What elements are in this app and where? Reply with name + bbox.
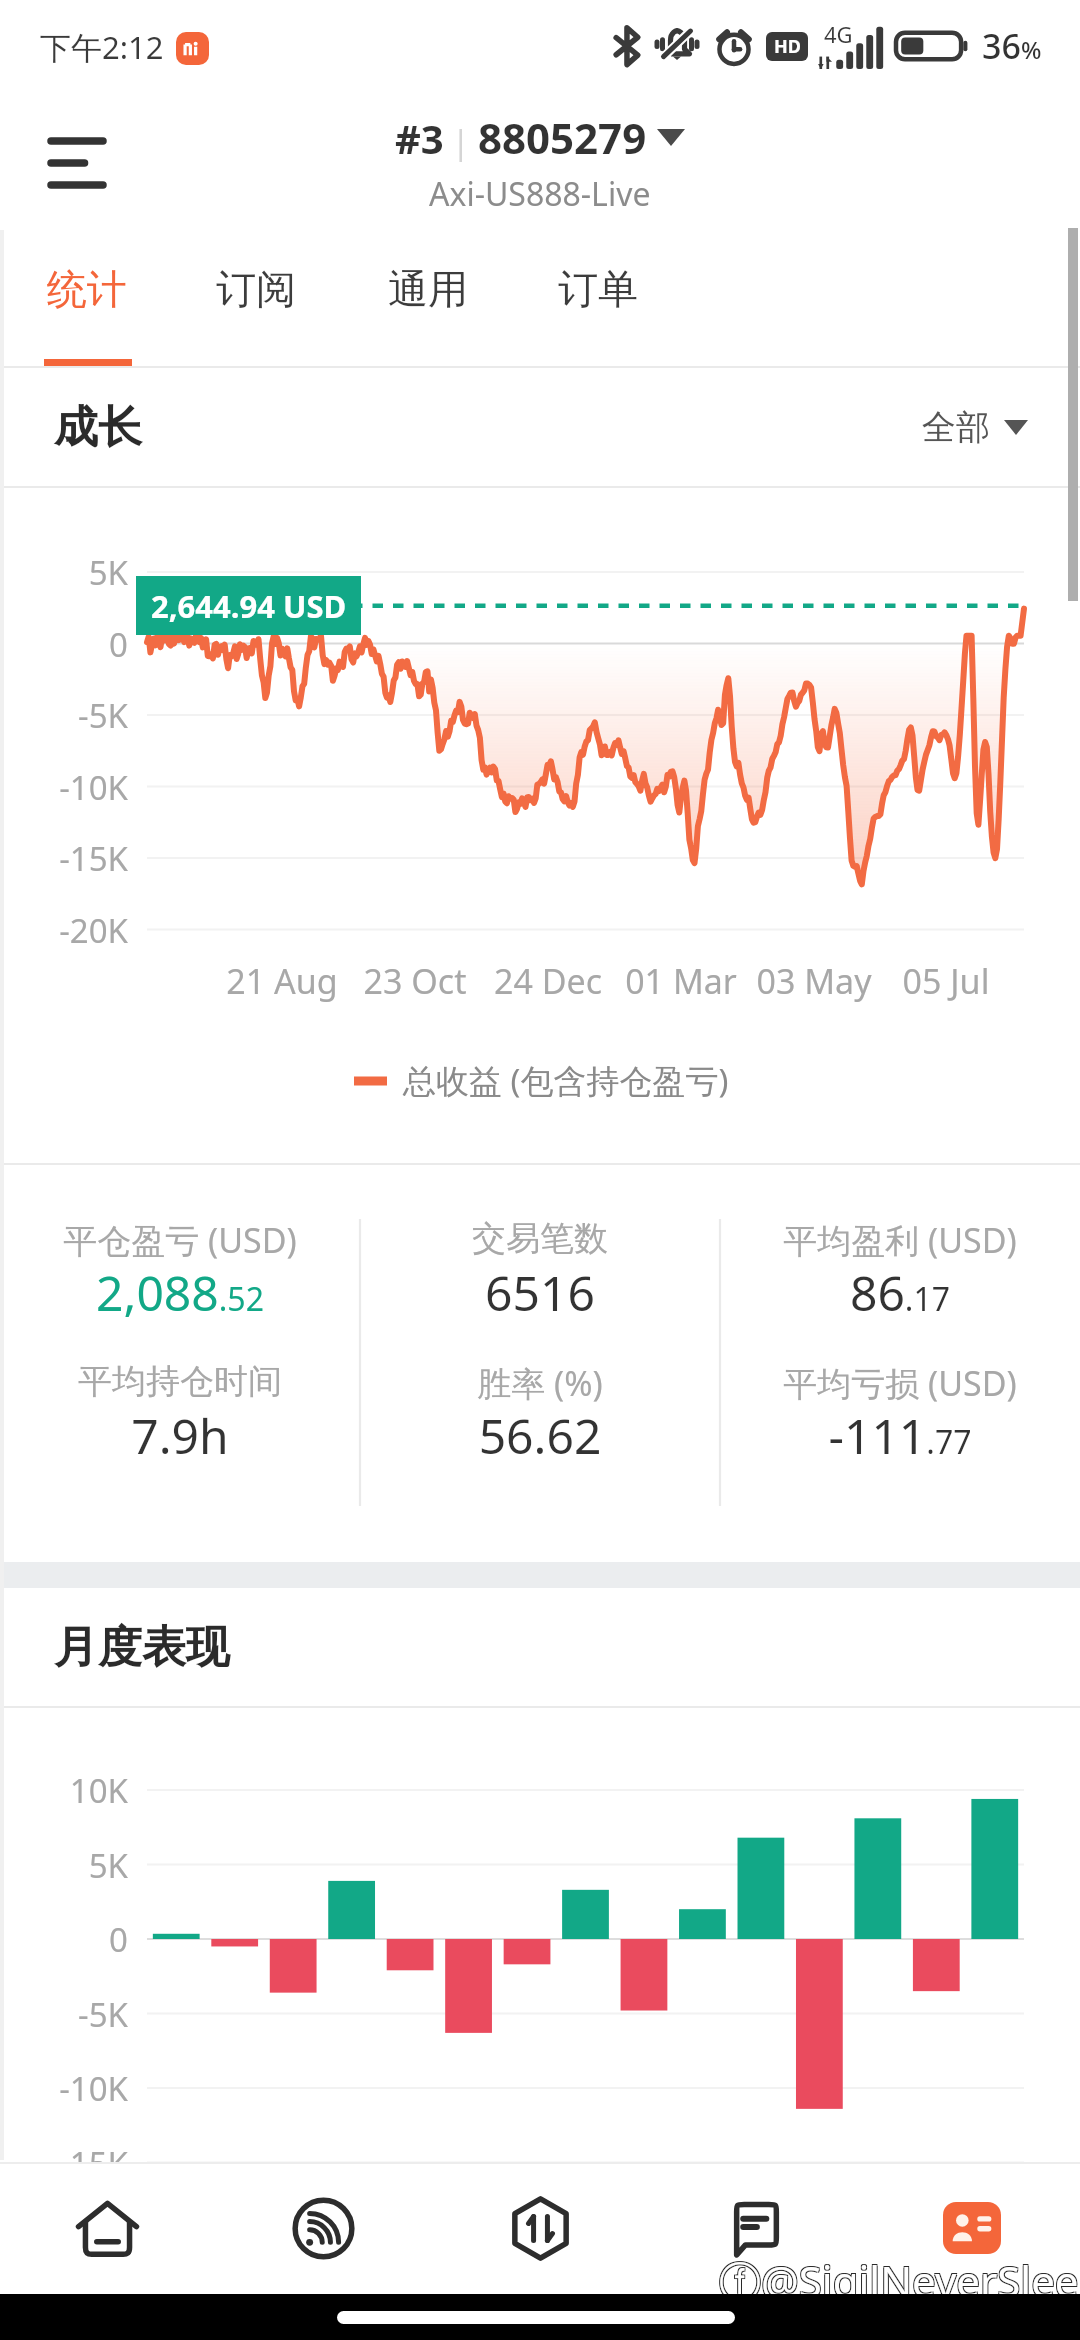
staticText: 通用 — [388, 264, 468, 314]
button[interactable]: Trade — [432, 2162, 648, 2294]
staticText: ⓕ@SigilNeverSleep — [718, 2251, 1080, 2308]
staticText: -15K — [59, 2141, 128, 2186]
staticText: ⓕ@SigilNeverSleep — [720, 2253, 1080, 2310]
staticText: 01 Mar — [591, 958, 771, 1004]
staticText: -10K — [59, 2066, 128, 2111]
button[interactable]: 订单 — [542, 230, 654, 366]
button[interactable]: #3 | 8805279 — [389, 105, 691, 170]
staticText: 平均持仓时间 — [0, 1360, 370, 1403]
staticText: 月度表现 — [54, 1620, 230, 1675]
button[interactable]: 订阅 — [200, 230, 312, 366]
staticText: 0 — [109, 622, 128, 667]
button[interactable]: Messages — [648, 2162, 864, 2294]
staticText: 10K — [69, 1768, 128, 1813]
staticText: 21 Aug — [192, 958, 372, 1004]
staticText: 7.9h — [0, 1403, 370, 1468]
staticText: 2,088.52 — [0, 1260, 370, 1325]
staticText: Axi-US888-Live — [429, 172, 651, 216]
staticText: 05 Jul — [856, 958, 1036, 1004]
staticText: 2,644.94 USD — [151, 585, 347, 627]
staticText: 6516 — [350, 1260, 730, 1325]
staticText: 平均亏损 (USD) — [710, 1360, 1080, 1406]
button[interactable]: 通用 — [372, 230, 484, 366]
staticText: 56.62 — [350, 1403, 730, 1468]
staticText: -111.77 — [710, 1403, 1080, 1468]
staticText: 4G — [824, 19, 853, 49]
staticText: 86.17 — [710, 1260, 1080, 1325]
staticText: 5K — [88, 1843, 128, 1888]
staticText: 订单 — [558, 264, 638, 314]
staticText: 胜率 (%) — [350, 1360, 730, 1406]
staticText: 03 May — [724, 958, 904, 1004]
button[interactable]: 统计 — [31, 230, 143, 366]
button[interactable]: Menu — [18, 104, 136, 222]
staticText: -10K — [59, 765, 128, 810]
staticText: -5K — [78, 693, 128, 738]
staticText: 交易笔数 — [350, 1217, 730, 1260]
staticText: 0 — [109, 1917, 128, 1962]
staticText: ⓕ@SigilNeverSleep — [720, 2251, 1080, 2308]
staticText: -20K — [59, 908, 128, 953]
staticText: 23 Oct — [325, 958, 505, 1004]
button[interactable]: Profile — [864, 2162, 1080, 2294]
button[interactable]: Home — [0, 2162, 215, 2294]
staticText: -15K — [59, 836, 128, 881]
staticText: ⓕ@SigilNeverSleep — [719, 2252, 1080, 2309]
staticText: 全部 — [922, 406, 990, 449]
button[interactable]: 全部 — [912, 368, 1038, 486]
staticText: 订阅 — [216, 264, 296, 314]
staticText: 平仓盈亏 (USD) — [0, 1217, 370, 1263]
button[interactable]: Signals — [215, 2162, 431, 2294]
staticText: 5K — [88, 550, 128, 595]
staticText: 24 Dec — [458, 958, 638, 1004]
staticText: 36% — [982, 23, 1042, 69]
staticText: 下午2:12 — [40, 26, 164, 68]
staticText: 统计 — [47, 264, 127, 314]
staticText: 总收益 (包含持仓盈亏) — [403, 1058, 729, 1103]
staticText: -5K — [78, 1992, 128, 2037]
staticText: HD — [774, 34, 801, 59]
staticText: 平均盈利 (USD) — [710, 1217, 1080, 1263]
staticText: ⓕ@SigilNeverSleep — [718, 2253, 1080, 2310]
staticText: 成长 — [54, 400, 142, 455]
staticText: #3 | 8805279 — [395, 109, 647, 166]
